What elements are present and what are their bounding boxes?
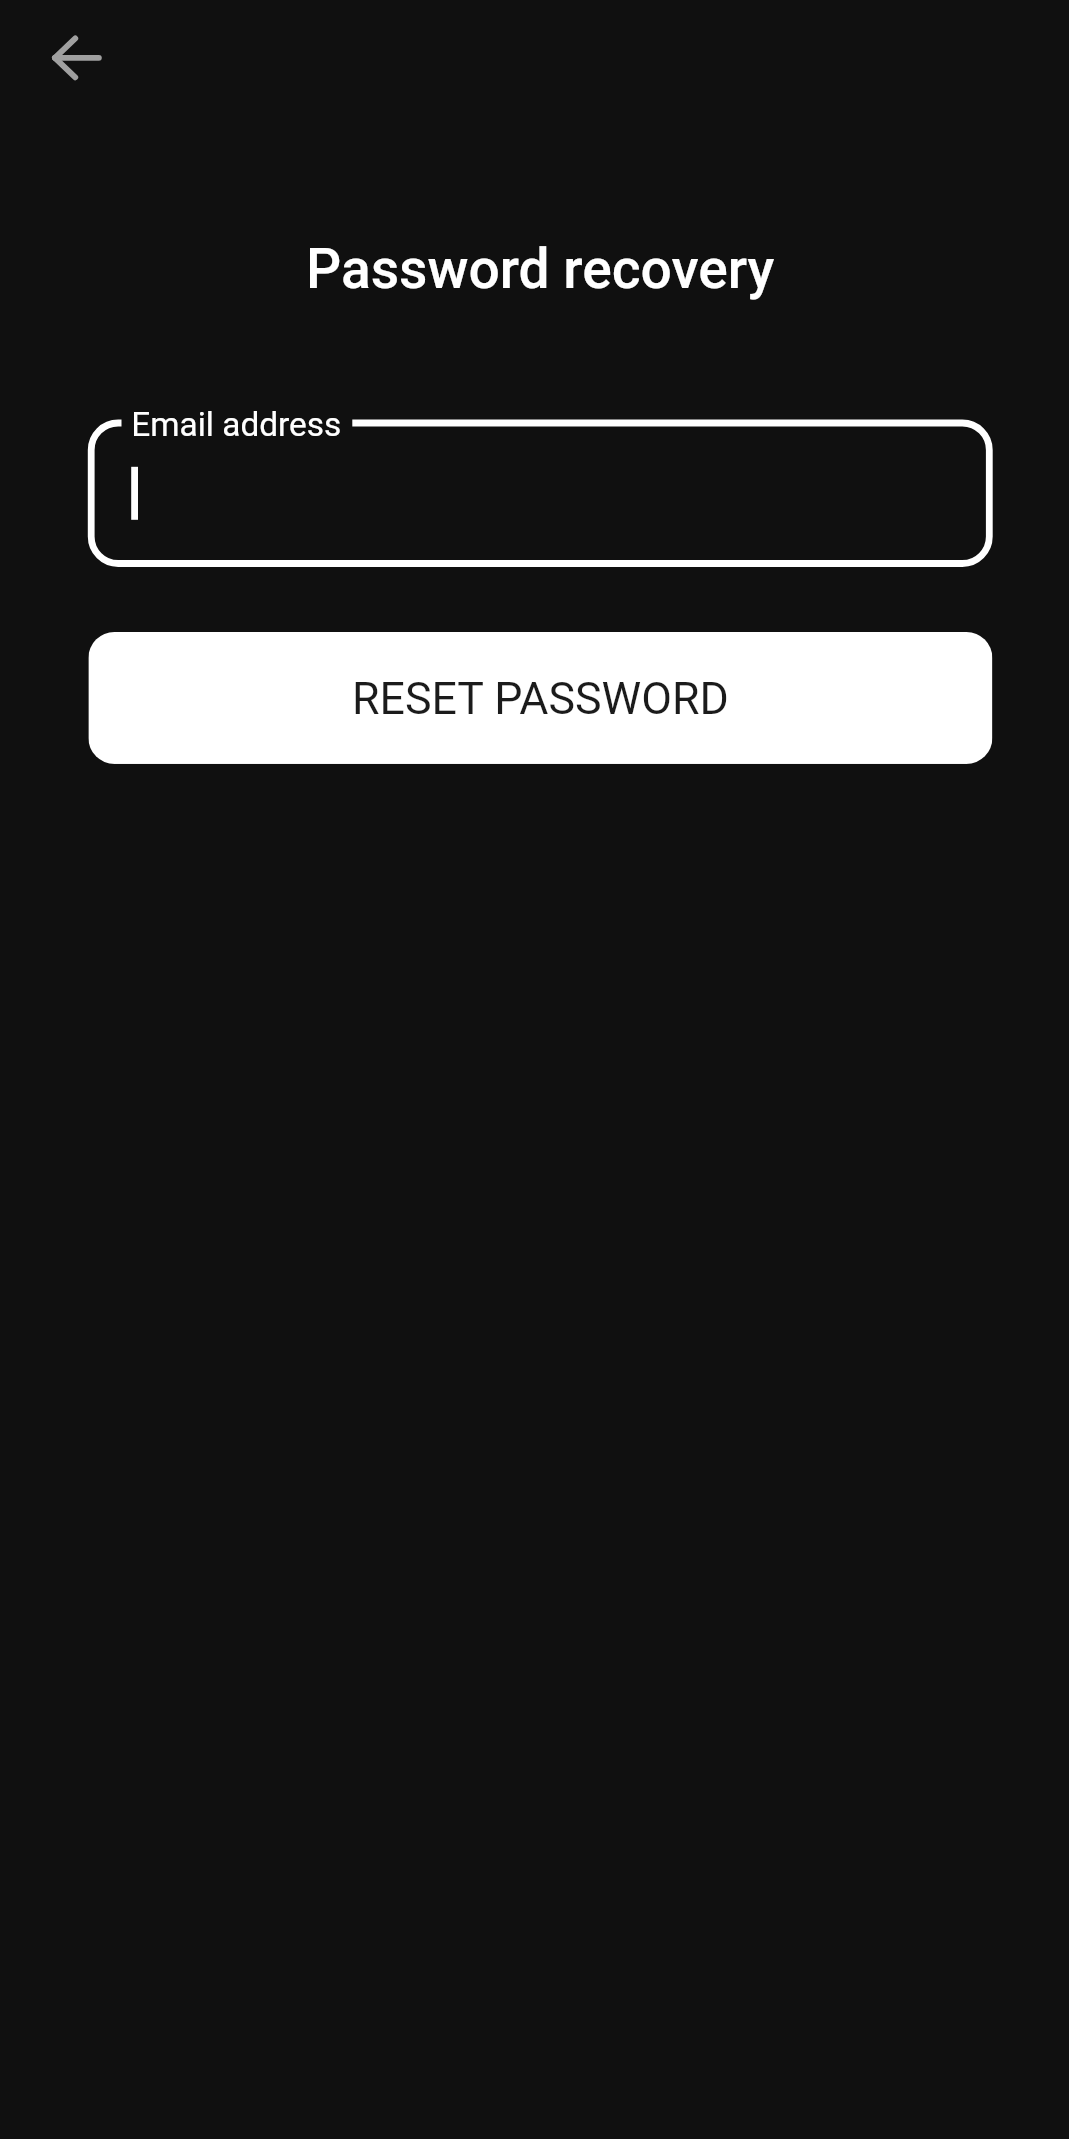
button[interactable] bbox=[88, 420, 993, 567]
staticText: Password recovery bbox=[6, 237, 1069, 301]
staticText: Email address bbox=[131, 405, 341, 444]
button[interactable]: RESET PASSWORD bbox=[88, 632, 992, 764]
staticText: RESET PASSWORD bbox=[352, 673, 729, 725]
button[interactable]: Back bbox=[29, 10, 125, 106]
